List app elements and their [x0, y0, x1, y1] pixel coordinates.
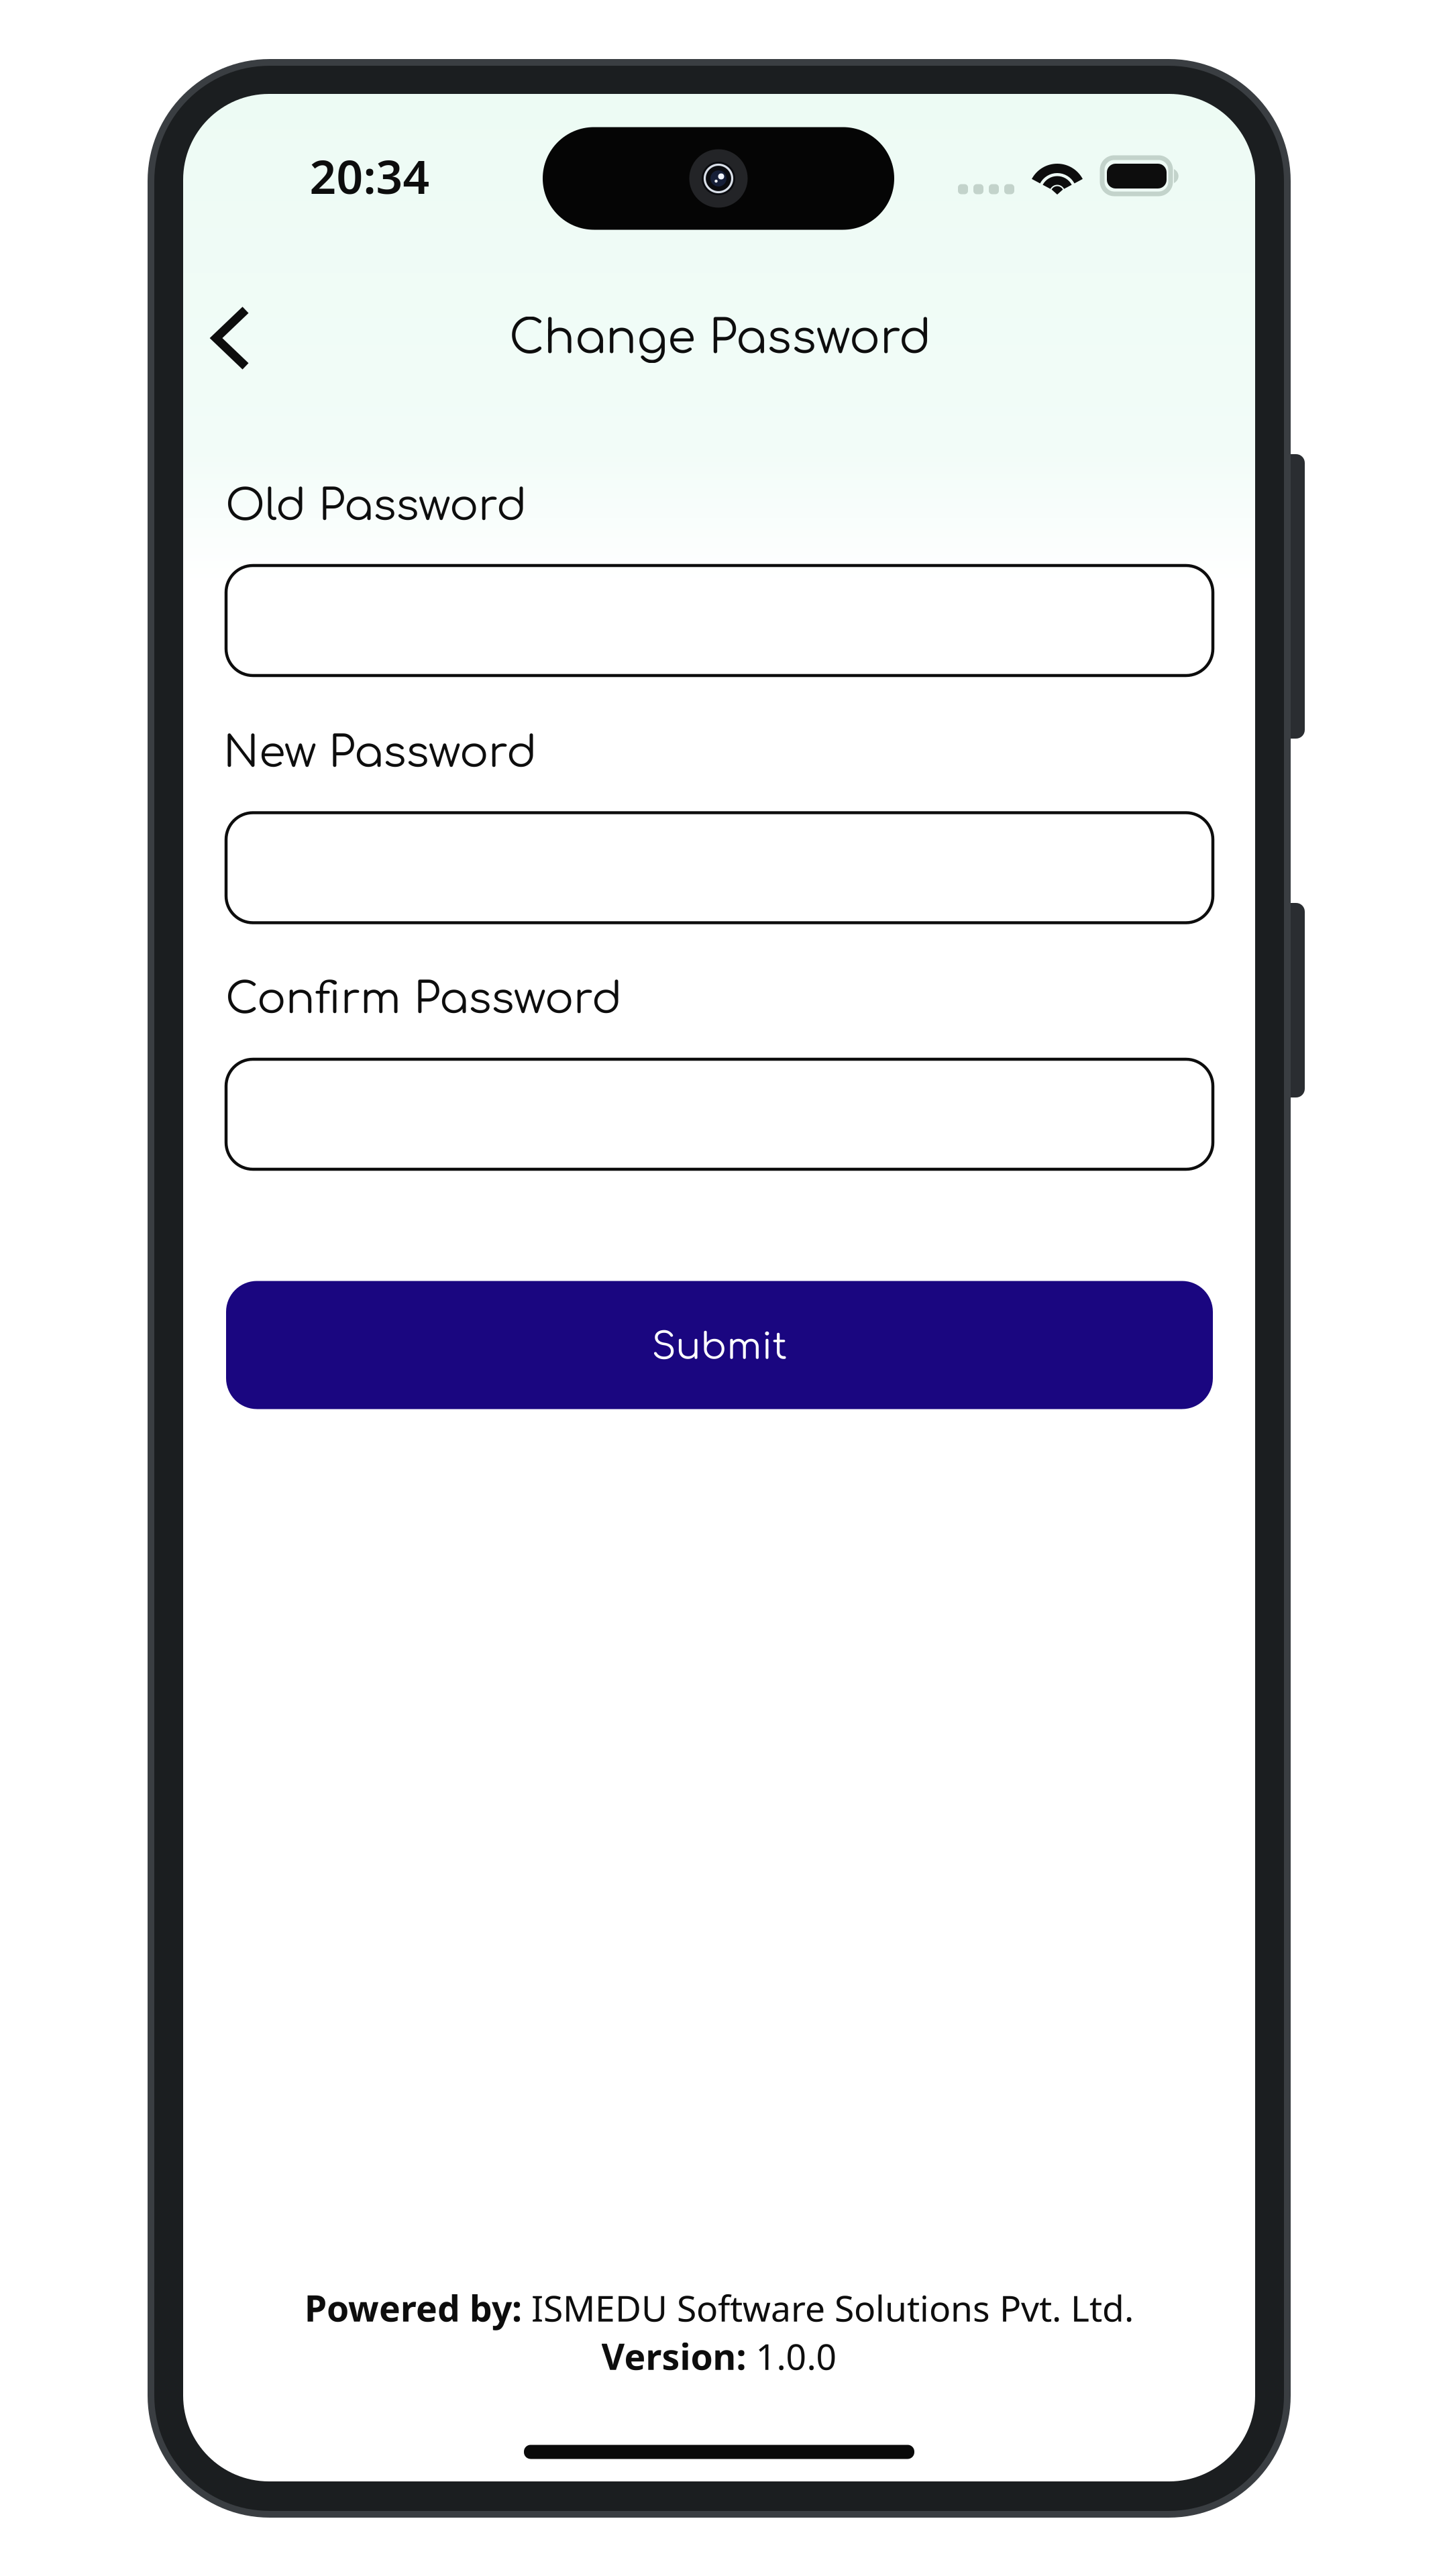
button[interactable]: Submit	[226, 1281, 1213, 1409]
staticText: Powered by: ISMEDU Software Solutions Pv…	[305, 2284, 1134, 2331]
staticText: Change Password	[509, 313, 931, 364]
staticText: Confirm Password	[225, 975, 622, 1023]
staticText: Version: 1.0.0	[601, 2332, 837, 2380]
button[interactable]: Back	[180, 288, 281, 388]
staticText: Old Password	[225, 482, 527, 530]
staticText: 20:34	[310, 145, 430, 207]
staticText: New Password	[223, 729, 537, 777]
staticText: Submit	[652, 1327, 787, 1367]
